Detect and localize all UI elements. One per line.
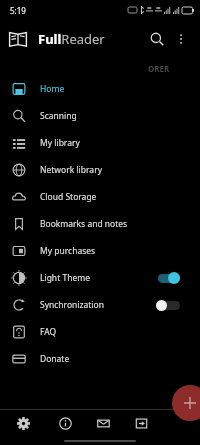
staticText: Synchronization — [40, 299, 104, 311]
button[interactable]: FAQ — [0, 318, 200, 345]
button[interactable]: Cloud Storage — [0, 183, 200, 210]
staticText: FullReader — [38, 30, 105, 48]
button[interactable]: Bookmarks and notes — [0, 210, 200, 237]
button[interactable]: Light Theme — [0, 264, 200, 291]
button[interactable]: Home — [0, 75, 200, 102]
staticText: Light Theme — [40, 272, 90, 284]
button[interactable]: My library — [0, 129, 200, 156]
button[interactable]: Scanning — [0, 102, 200, 129]
staticText: 5:19 — [10, 5, 26, 16]
staticText: FAQ — [40, 326, 57, 338]
button[interactable]: Feedback — [84, 410, 122, 436]
button[interactable]: Network library — [0, 156, 200, 183]
button[interactable]: Synchronization — [0, 291, 200, 318]
staticText: Bookmarks and notes — [40, 218, 128, 230]
staticText: Network library — [40, 164, 102, 176]
staticText: ORER — [148, 63, 170, 74]
button[interactable]: Add — [172, 385, 200, 421]
staticText: Home — [40, 83, 65, 95]
button[interactable]: About — [46, 410, 84, 436]
button[interactable]: Search — [144, 26, 170, 52]
button[interactable]: Donate — [0, 345, 200, 372]
button[interactable]: My purchases — [0, 237, 200, 264]
staticText: Cloud Storage — [40, 191, 97, 203]
button[interactable]: Exit — [122, 410, 160, 436]
button[interactable]: More options — [170, 28, 192, 50]
staticText: My purchases — [40, 245, 96, 257]
button[interactable]: Settings — [0, 410, 46, 436]
staticText: Donate — [40, 353, 70, 365]
staticText: My library — [40, 137, 80, 149]
staticText: Scanning — [40, 110, 77, 122]
